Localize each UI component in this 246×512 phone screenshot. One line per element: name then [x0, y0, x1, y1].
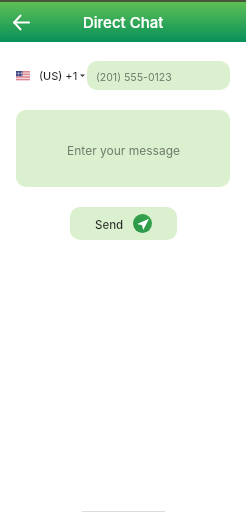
button[interactable]: Send — [70, 207, 177, 240]
staticText: Enter your message — [67, 143, 180, 158]
button[interactable]: Back — [6, 7, 36, 37]
button[interactable]: (201) 555-0123 — [87, 61, 230, 90]
staticText: (201) 555-0123 — [96, 71, 172, 84]
button[interactable]: Enter your message — [16, 110, 230, 187]
staticText: Direct Chat — [83, 13, 164, 31]
staticText: (US) +1 — [39, 69, 78, 82]
staticText: Send — [95, 218, 124, 232]
button[interactable]: (US) +1 — [10, 66, 91, 85]
